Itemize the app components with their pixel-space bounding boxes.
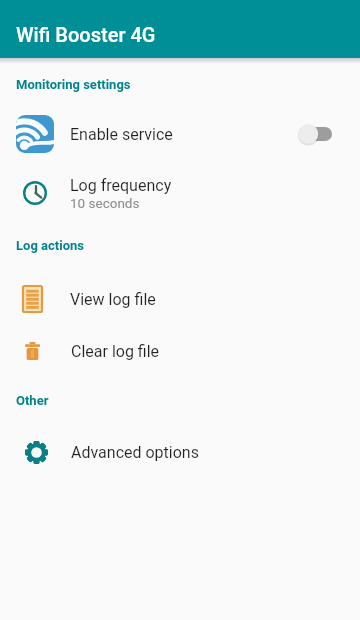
button[interactable] <box>299 123 332 145</box>
staticText: Advanced options <box>71 443 199 462</box>
button[interactable]: Clear log file <box>0 327 360 375</box>
staticText: Enable service <box>70 125 173 144</box>
button[interactable]: Log frequency <box>0 162 360 224</box>
staticText: Wifi Booster 4G <box>16 23 156 46</box>
staticText: Log actions <box>16 238 84 253</box>
button[interactable]: Advanced options <box>0 424 360 480</box>
staticText: Log frequency <box>70 176 172 195</box>
staticText: Monitoring settings <box>16 77 131 92</box>
staticText: View log file <box>70 290 156 309</box>
staticText: Clear log file <box>71 342 160 361</box>
button[interactable]: View log file <box>0 271 360 327</box>
staticText: Other <box>16 393 49 408</box>
staticText: 10 seconds <box>70 195 140 211</box>
button[interactable]: Enable service <box>0 106 360 162</box>
